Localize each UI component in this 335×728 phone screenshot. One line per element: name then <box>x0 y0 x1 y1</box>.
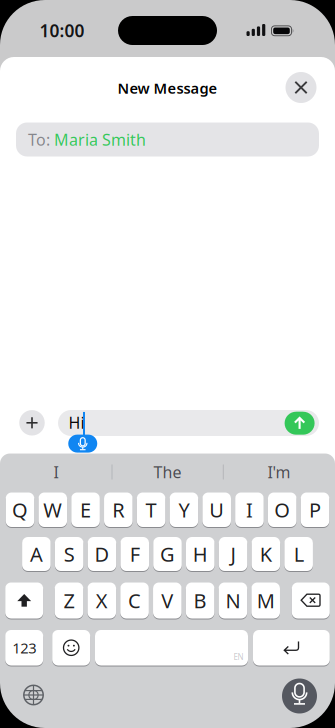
staticText: S <box>64 541 75 567</box>
staticText: Hi <box>68 412 84 433</box>
staticText: D <box>94 541 109 567</box>
button[interactable]: The <box>117 462 217 482</box>
button[interactable]: C <box>120 582 149 619</box>
staticText: W <box>43 496 62 523</box>
button[interactable]: D <box>88 537 116 572</box>
staticText: M <box>257 587 275 614</box>
button[interactable]: Emoji <box>52 630 90 666</box>
button[interactable]: Delete <box>292 582 330 619</box>
staticText: P <box>309 496 321 523</box>
staticText: EN <box>233 652 243 662</box>
staticText: B <box>194 587 207 614</box>
button[interactable]: G <box>153 537 182 572</box>
staticText: A <box>30 541 43 567</box>
staticText: C <box>128 587 141 614</box>
staticText: K <box>260 541 272 567</box>
button[interactable]: T <box>137 492 165 528</box>
staticText: H <box>193 541 208 567</box>
button[interactable]: R <box>104 492 133 528</box>
staticText: J <box>231 541 236 567</box>
staticText: O <box>274 496 290 523</box>
button[interactable]: Next keyboard <box>22 684 44 706</box>
staticText: R <box>112 496 124 523</box>
button[interactable]: Send <box>285 412 315 435</box>
button[interactable]: F <box>120 537 149 572</box>
button[interactable]: I <box>6 462 106 482</box>
button[interactable]: I <box>235 492 264 528</box>
button[interactable]: Add attachment <box>19 410 45 436</box>
button[interactable]: H <box>186 537 215 572</box>
button[interactable]: E <box>71 492 100 528</box>
button[interactable]: K <box>252 537 280 572</box>
button[interactable]: J <box>219 537 247 572</box>
button[interactable]: Dictate <box>68 435 97 453</box>
staticText: 123 <box>12 638 36 657</box>
staticText: F <box>130 541 140 567</box>
button[interactable]: S <box>55 537 83 572</box>
staticText: Maria Smith <box>54 129 146 150</box>
staticText: New Message <box>117 78 217 98</box>
staticText: G <box>160 541 175 567</box>
button[interactable]: X <box>87 582 116 619</box>
staticText: T <box>146 496 157 523</box>
staticText: I <box>246 496 253 523</box>
button[interactable]: P <box>301 492 329 528</box>
button[interactable]: V <box>153 582 182 619</box>
staticText: N <box>225 587 240 614</box>
button[interactable]: Q <box>6 492 34 528</box>
button[interactable]: L <box>284 537 313 572</box>
button[interactable]: O <box>268 492 296 528</box>
staticText: X <box>96 587 108 614</box>
button[interactable]: Shift <box>5 582 43 619</box>
button[interactable]: Close <box>285 72 316 103</box>
staticText: Q <box>12 496 28 523</box>
staticText: I <box>53 461 58 483</box>
button[interactable]: U <box>202 492 231 528</box>
button[interactable]: Numbers <box>5 630 43 666</box>
button[interactable]: N <box>219 582 247 619</box>
staticText: V <box>161 587 173 614</box>
staticText: Y <box>178 496 189 523</box>
button[interactable]: Y <box>170 492 198 528</box>
button[interactable]: B <box>186 582 214 619</box>
staticText: E <box>80 496 91 523</box>
staticText: Z <box>63 587 74 614</box>
button[interactable]: Space <box>95 630 248 666</box>
button[interactable]: A <box>22 537 51 572</box>
button[interactable]: Z <box>55 582 83 619</box>
button[interactable]: Return <box>253 630 330 666</box>
staticText: U <box>209 496 224 523</box>
button[interactable]: W <box>38 492 67 528</box>
button[interactable]: Dictation <box>282 678 317 713</box>
staticText: I'm <box>267 461 290 483</box>
button[interactable]: I'm <box>229 462 329 482</box>
staticText: 10:00 <box>39 19 84 42</box>
staticText: To: <box>28 129 50 150</box>
staticText: L <box>294 541 304 567</box>
button[interactable]: M <box>251 582 280 619</box>
staticText: The <box>153 461 181 483</box>
